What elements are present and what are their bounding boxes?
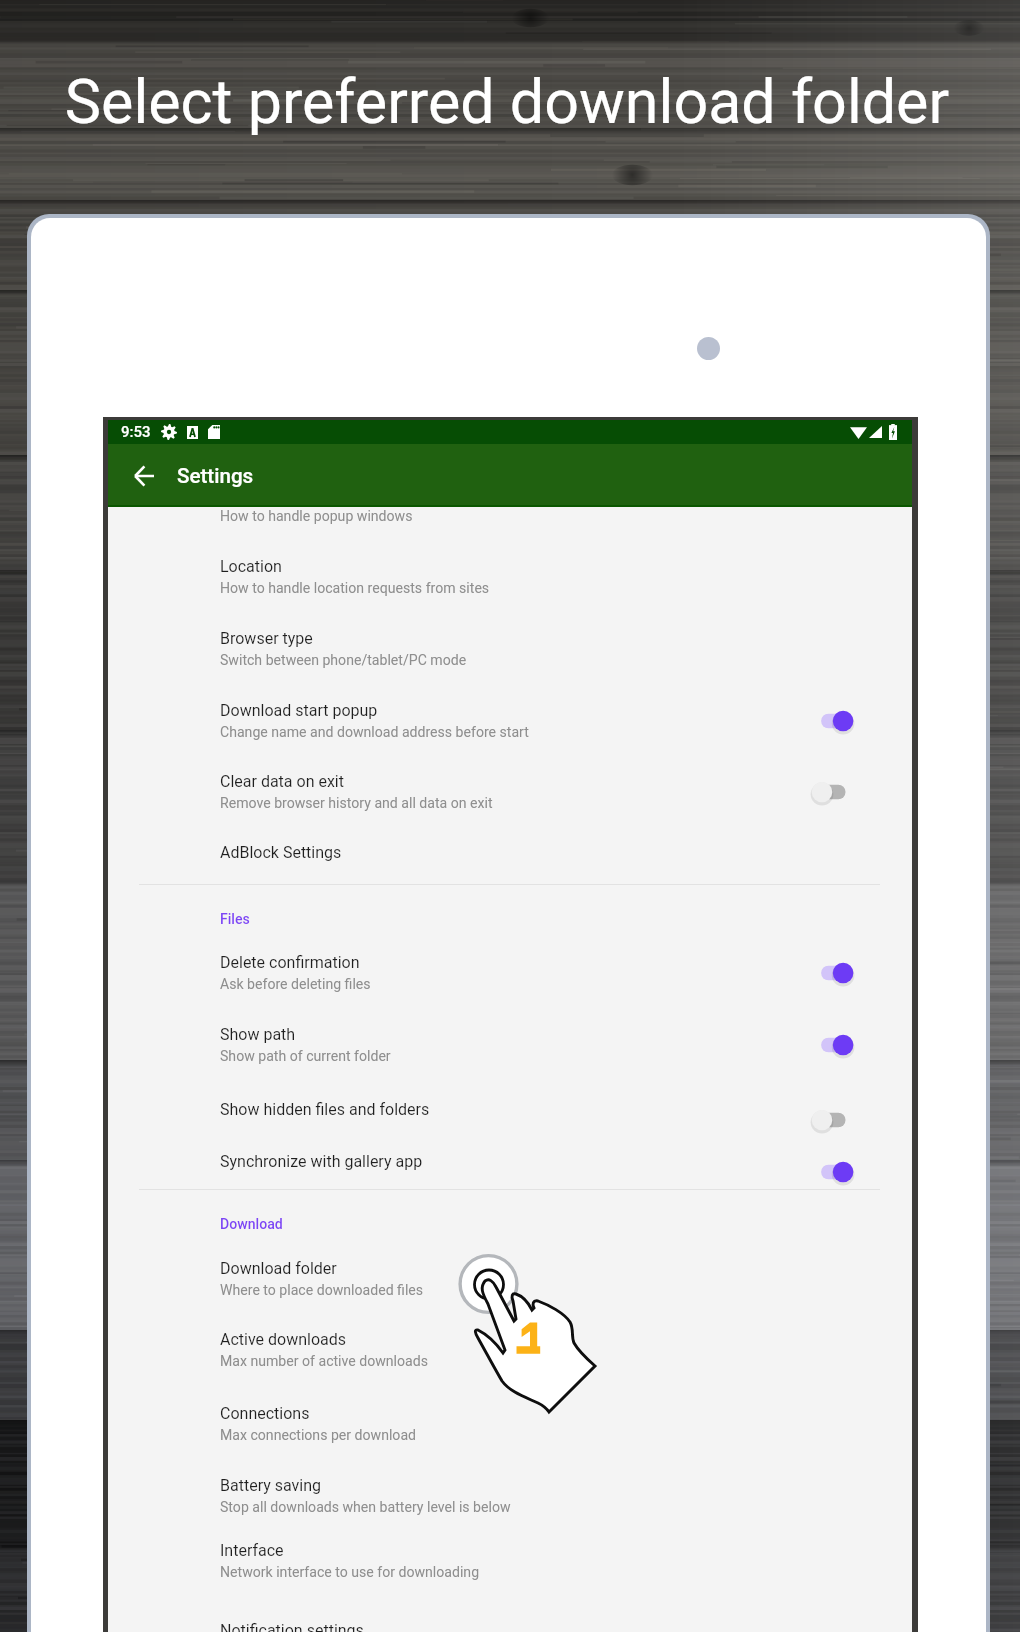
staticText: Interface (220, 1541, 284, 1560)
staticText: Connections (220, 1404, 310, 1423)
staticText: Synchronize with gallery app (220, 1152, 423, 1171)
staticText: Download (220, 1216, 283, 1233)
button[interactable]: Active downloads (108, 1313, 912, 1385)
button[interactable]: Location (108, 540, 912, 612)
button[interactable]: Show hidden files and folders (108, 1083, 912, 1135)
staticText: Show path of current folder (220, 1048, 391, 1065)
button[interactable]: Download start popup (108, 684, 912, 756)
staticText: Settings (177, 464, 254, 488)
button[interactable]: Toggle on (807, 1153, 853, 1191)
staticText: Location (220, 557, 282, 576)
staticText: Network interface to use for downloading (220, 1564, 480, 1581)
button[interactable]: Toggle off (807, 773, 853, 811)
staticText: Switch between phone/tablet/PC mode (220, 652, 467, 669)
button[interactable]: Delete confirmation (108, 936, 912, 1008)
button[interactable]: Toggle off (807, 1101, 853, 1139)
staticText: Delete confirmation (220, 953, 360, 972)
staticText: Max number of active downloads (220, 1353, 428, 1370)
staticText: How to handle location requests from sit… (220, 580, 490, 597)
button[interactable]: Synchronize with gallery app (108, 1135, 912, 1187)
staticText: Download start popup (220, 701, 378, 720)
staticText: Change name and download address before … (220, 724, 529, 741)
staticText: Show hidden files and folders (220, 1100, 430, 1119)
button[interactable]: AdBlock Settings (108, 826, 912, 878)
button[interactable]: Connections (108, 1387, 912, 1459)
staticText: Max connections per download (220, 1427, 417, 1444)
button[interactable]: Browser type (108, 612, 912, 684)
staticText: Clear data on exit (220, 772, 344, 791)
button[interactable]: Notification settings (108, 1604, 912, 1632)
button[interactable]: Toggle on (807, 954, 853, 992)
button[interactable]: Interface (108, 1524, 912, 1596)
staticText: Active downloads (220, 1330, 347, 1349)
button[interactable]: Toggle on (807, 1026, 853, 1064)
staticText: Ask before deleting files (220, 976, 371, 993)
staticText: Remove browser history and all data on e… (220, 795, 493, 812)
staticText: Select preferred download folder (0, 66, 1017, 137)
staticText: Files (220, 911, 250, 928)
staticText: Show path (220, 1025, 296, 1044)
staticText: Battery saving (220, 1476, 322, 1495)
staticText: Browser type (220, 629, 313, 648)
staticText: AdBlock Settings (220, 843, 342, 862)
staticText: How to handle popup windows (220, 508, 413, 525)
staticText: Where to place downloaded files (220, 1282, 424, 1299)
button[interactable]: Download folder (108, 1242, 912, 1314)
staticText: 9:53 (121, 423, 151, 441)
staticText: Notification settings (220, 1621, 364, 1632)
button[interactable]: Battery saving (108, 1459, 912, 1531)
button[interactable]: Show path (108, 1008, 912, 1080)
button[interactable]: Back (122, 454, 166, 498)
button[interactable]: Toggle on (807, 702, 853, 740)
button[interactable]: Clear data on exit (108, 755, 912, 827)
staticText: Download folder (220, 1259, 337, 1278)
staticText: Stop all downloads when battery level is… (220, 1499, 511, 1516)
